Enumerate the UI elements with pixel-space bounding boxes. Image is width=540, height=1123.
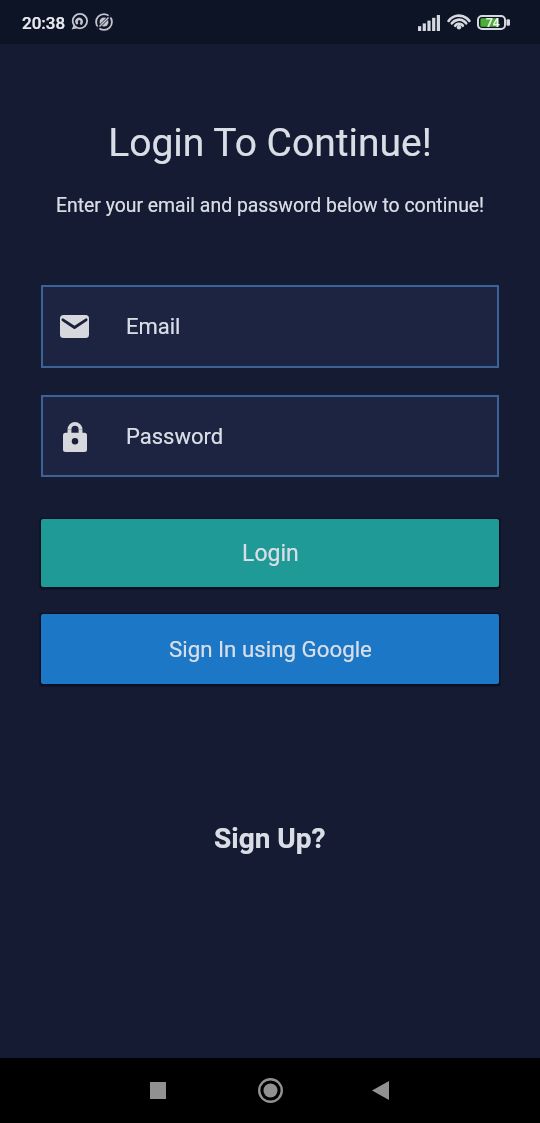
button[interactable]: Email — [41, 285, 499, 368]
staticText: Login — [242, 540, 299, 567]
staticText: 74 — [486, 16, 500, 30]
button[interactable]: Sign Up? — [194, 810, 346, 867]
button[interactable]: Login — [41, 519, 499, 587]
staticText: Sign In using Google — [169, 636, 372, 662]
button[interactable]: Home — [240, 1058, 300, 1123]
staticText: Enter your email and password below to c… — [0, 194, 540, 217]
button[interactable]: Password — [41, 395, 499, 477]
staticText: Sign Up? — [214, 822, 326, 855]
button[interactable]: Back — [350, 1058, 410, 1123]
button[interactable]: Recent apps — [128, 1058, 188, 1123]
staticText: Email — [126, 314, 181, 340]
button[interactable]: Sign In using Google — [41, 614, 499, 684]
staticText: Password — [126, 424, 224, 450]
staticText: 20:38 — [22, 13, 66, 33]
staticText: Login To Continue! — [0, 120, 540, 166]
